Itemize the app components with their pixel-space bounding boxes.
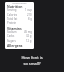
button[interactable]: Serving	[7, 8, 32, 12]
button[interactable]: Sodium	[7, 30, 32, 34]
button[interactable]: Nutrition	[7, 4, 32, 8]
staticText: 12 g	[26, 39, 32, 43]
staticText: Protein	[7, 21, 17, 25]
button[interactable]: Protein	[7, 21, 32, 25]
staticText: How font is	[21, 55, 43, 60]
staticText: 32 g	[26, 34, 32, 38]
staticText: 45 mg	[24, 30, 32, 34]
staticText: Allergens	[7, 43, 23, 47]
staticText: so small?	[23, 61, 41, 66]
staticText: Total fat	[7, 17, 18, 21]
staticText: Vitamins	[7, 26, 22, 30]
staticText: Serving	[7, 8, 17, 12]
staticText: 8 g	[28, 17, 32, 21]
staticText: 1 cup	[25, 8, 32, 12]
staticText: Carbs	[7, 34, 15, 38]
button[interactable]: Calories	[7, 13, 32, 17]
button[interactable]: Total fat	[7, 17, 32, 21]
button[interactable]: Sugars	[7, 39, 32, 43]
button[interactable]: Vitamins	[7, 26, 32, 30]
staticText: Nutrition	[7, 4, 23, 8]
staticText: product details	[7, 2, 32, 5]
button[interactable]: Carbs	[7, 34, 32, 38]
staticText: Sugars	[7, 39, 16, 43]
staticText: Sodium	[7, 30, 17, 34]
staticText: 210	[27, 13, 32, 17]
staticText: Calories	[7, 13, 18, 17]
button[interactable]: Allergens	[7, 43, 32, 47]
